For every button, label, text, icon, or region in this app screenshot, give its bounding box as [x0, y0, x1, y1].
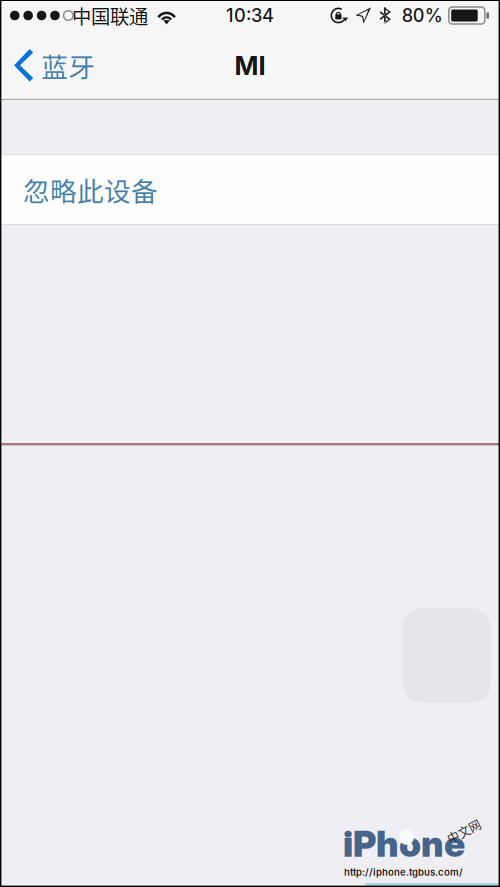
staticText: 忽略此设备 [23, 170, 158, 209]
staticText: http://iphone.tgbus.com/ [344, 866, 463, 878]
staticText: MI [234, 50, 265, 81]
staticText: 80% [402, 4, 443, 26]
staticText: 中国联通 [72, 1, 148, 29]
staticText: 中文网 [446, 823, 482, 840]
staticText: 蓝牙 [41, 46, 95, 85]
staticText: 10:34 [226, 4, 274, 26]
button[interactable]: 忽略此设备 [0, 155, 500, 224]
button[interactable]: 蓝牙 [0, 31, 107, 100]
staticText: iPhone [343, 822, 465, 865]
